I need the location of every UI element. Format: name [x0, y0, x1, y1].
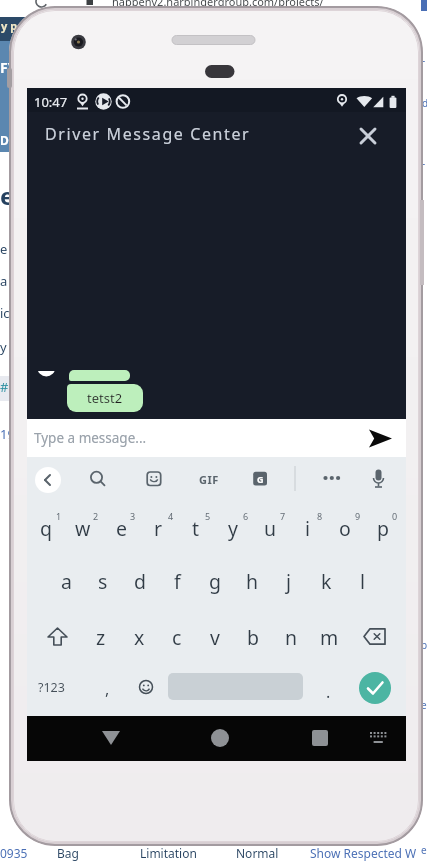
button[interactable]: j [272, 560, 306, 602]
button[interactable]: ?123 [29, 667, 73, 707]
staticText: 4 [168, 510, 174, 522]
staticText: ic [0, 304, 10, 322]
button[interactable] [366, 467, 390, 491]
button[interactable]: y [216, 507, 250, 549]
staticText: x [134, 624, 145, 651]
button[interactable]: Type a message... [27, 419, 406, 457]
button[interactable] [354, 122, 382, 150]
button[interactable]: h [235, 560, 269, 602]
staticText: d [134, 568, 146, 595]
button[interactable]: a [49, 560, 83, 602]
staticText: 10:47 [34, 93, 68, 111]
button[interactable]: b [236, 616, 270, 658]
button[interactable] [132, 673, 160, 701]
button[interactable]: t [179, 507, 213, 549]
button[interactable] [94, 721, 128, 755]
staticText: y [0, 338, 7, 356]
button[interactable] [86, 467, 110, 491]
button[interactable] [317, 467, 341, 491]
staticText: r [154, 515, 163, 542]
staticText: e [0, 240, 8, 258]
button[interactable]: o [328, 507, 362, 549]
staticText: q [40, 515, 52, 542]
staticText: happenv2.harbingergroup.com/projects/ [112, 0, 324, 9]
button[interactable] [203, 721, 237, 755]
button[interactable]: x [122, 616, 156, 658]
staticText: z [96, 624, 106, 651]
staticText: h [246, 568, 259, 595]
button[interactable] [35, 467, 61, 493]
button[interactable]: w [66, 507, 100, 549]
staticText: t [192, 515, 200, 542]
button[interactable]: u [253, 507, 287, 549]
button[interactable]: GIF [197, 467, 221, 491]
button[interactable]: l [346, 560, 380, 602]
button[interactable]: z [84, 616, 118, 658]
button[interactable]: r [141, 507, 175, 549]
staticText: - [422, 53, 426, 67]
button[interactable] [248, 467, 272, 491]
staticText: a [61, 568, 72, 595]
staticText: ed [421, 843, 427, 857]
button[interactable]: s [86, 560, 120, 602]
button[interactable]: i [291, 507, 325, 549]
staticText: y [228, 515, 238, 542]
staticText: m [320, 624, 339, 651]
staticText: f [174, 568, 181, 595]
button[interactable]: , [97, 670, 117, 708]
staticText: p [377, 515, 389, 542]
button[interactable] [303, 721, 337, 755]
staticText: . [326, 681, 331, 703]
staticText: a [0, 272, 8, 290]
staticText: y p [1, 18, 18, 33]
staticText: FY [0, 58, 17, 77]
staticText: u [264, 515, 277, 542]
staticText: G [257, 473, 264, 485]
button[interactable]: e [104, 507, 138, 549]
staticText: n [285, 624, 298, 651]
staticText: i [305, 515, 311, 542]
button[interactable]: g [198, 560, 232, 602]
button[interactable]: d [123, 560, 157, 602]
staticText: s [98, 568, 108, 595]
staticText: Limitation [140, 845, 197, 861]
staticText: Bag [57, 845, 79, 861]
staticText: Show Respected W [310, 845, 417, 861]
button[interactable]: . [318, 675, 338, 709]
button[interactable] [142, 467, 166, 491]
staticText: - [422, 156, 426, 170]
staticText: v [210, 624, 220, 651]
staticText: g [209, 568, 221, 595]
button[interactable] [39, 616, 75, 656]
staticText: k [321, 568, 332, 595]
staticText: o [339, 515, 351, 542]
staticText: Normal [236, 845, 279, 861]
staticText: b [247, 624, 259, 651]
button[interactable] [363, 422, 397, 454]
staticText: 0935 [0, 845, 28, 861]
staticText: 6 [243, 510, 249, 522]
staticText: w [75, 515, 91, 542]
staticText: l [360, 568, 366, 595]
staticText: pl [421, 638, 427, 652]
button[interactable] [365, 724, 391, 752]
button[interactable]: p [366, 507, 400, 549]
button[interactable]: m [312, 616, 346, 658]
staticText: 3 [130, 510, 136, 522]
button[interactable]: v [198, 616, 232, 658]
staticText: 9 [355, 510, 361, 522]
button[interactable] [356, 616, 394, 656]
staticText: 8 [317, 510, 323, 522]
button[interactable]: f [160, 560, 194, 602]
button[interactable]: c [160, 616, 194, 658]
staticText: Type a message... [34, 429, 147, 447]
staticText: 2 [93, 510, 99, 522]
staticText: j [286, 568, 292, 595]
staticText: es [0, 179, 27, 212]
button[interactable]: k [309, 560, 343, 602]
staticText: 0 [392, 510, 398, 522]
button[interactable]: n [274, 616, 308, 658]
button[interactable]: q [29, 507, 63, 549]
button[interactable] [359, 672, 391, 704]
